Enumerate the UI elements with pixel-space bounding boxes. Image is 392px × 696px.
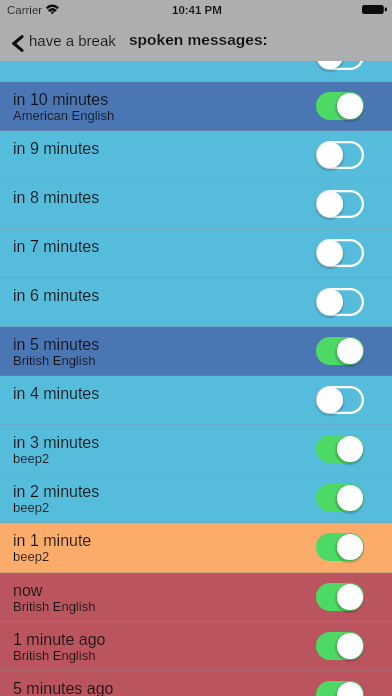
staticText: 10:41 PM <box>172 4 222 17</box>
button[interactable]: in 3 minutes <box>0 425 392 474</box>
staticText: beep2 <box>13 500 50 515</box>
button[interactable]: On <box>316 484 364 512</box>
button[interactable]: On <box>316 632 364 660</box>
staticText: in 6 minutes <box>13 287 100 305</box>
staticText: in 7 minutes <box>13 238 100 256</box>
staticText: 1 minute ago <box>13 631 106 649</box>
staticText: spoken messages: <box>129 31 268 48</box>
button[interactable]: Off <box>316 386 364 414</box>
other: Battery full <box>362 5 387 14</box>
button[interactable]: Off <box>316 190 364 218</box>
staticText: in 1 minute <box>13 532 92 550</box>
staticText: British English <box>13 648 96 663</box>
button[interactable]: in 8 minutes <box>0 180 392 229</box>
staticText: in 2 minutes <box>13 483 100 501</box>
button[interactable]: in 7 minutes <box>0 229 392 278</box>
staticText: British English <box>13 599 96 614</box>
staticText: in 5 minutes <box>13 336 100 354</box>
staticText: now <box>13 582 43 600</box>
staticText: in 10 minutes <box>13 91 109 109</box>
button[interactable]: in 1 minute <box>0 523 392 573</box>
staticText: in 8 minutes <box>13 189 100 207</box>
other: Wi-Fi signal <box>45 1 60 15</box>
button[interactable]: in 2 minutes <box>0 474 392 523</box>
staticText: have a break <box>29 32 116 49</box>
button[interactable]: On <box>316 92 364 120</box>
button[interactable]: On <box>316 583 364 611</box>
button[interactable]: On <box>316 337 364 365</box>
button[interactable]: in 5 minutes <box>0 327 392 376</box>
button[interactable]: in 4 minutes <box>0 376 392 425</box>
staticText: beep2 <box>13 549 50 564</box>
button[interactable]: in 9 minutes <box>0 131 392 180</box>
button[interactable]: Off <box>316 141 364 169</box>
button[interactable]: 5 minutes ago <box>0 671 392 696</box>
button[interactable]: have a break <box>0 29 124 57</box>
button[interactable]: 1 minute ago <box>0 622 392 671</box>
staticText: in 3 minutes <box>13 434 100 452</box>
button[interactable]: in 6 minutes <box>0 278 392 327</box>
staticText: in 9 minutes <box>13 140 100 158</box>
button[interactable]: in 10 minutes <box>0 82 392 131</box>
button[interactable]: Off <box>316 239 364 267</box>
button[interactable]: now <box>0 573 392 622</box>
button[interactable]: On <box>316 681 364 696</box>
staticText: beep2 <box>13 451 50 466</box>
button[interactable]: On <box>316 533 364 561</box>
staticText: American English <box>13 108 115 123</box>
staticText: British English <box>13 353 96 368</box>
button[interactable]: Off <box>316 42 364 70</box>
staticText: Carrier <box>7 4 43 17</box>
staticText: 5 minutes ago <box>13 680 114 696</box>
staticText: in 4 minutes <box>13 385 100 403</box>
button[interactable]: On <box>316 435 364 463</box>
button[interactable]: Off <box>316 288 364 316</box>
button[interactable]: Off <box>0 32 392 82</box>
